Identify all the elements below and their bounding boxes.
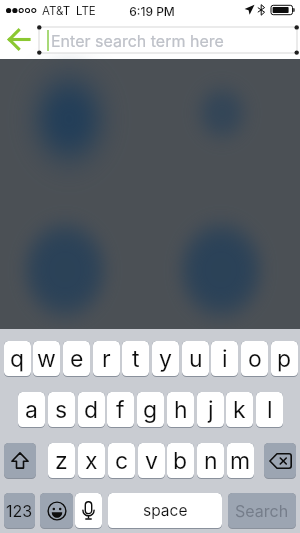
button[interactable]: p [271, 341, 298, 376]
staticText: j [208, 396, 214, 424]
button[interactable]: Microphone [75, 493, 102, 528]
staticText: u [189, 345, 203, 373]
staticText: Enter search term here [51, 31, 224, 50]
button[interactable]: m [227, 443, 254, 478]
button[interactable]: t [122, 341, 149, 376]
staticText: c [115, 447, 129, 475]
button[interactable]: q [4, 341, 31, 376]
button[interactable]: l [256, 392, 283, 427]
button[interactable]: h [167, 392, 194, 427]
staticText: i [222, 345, 228, 373]
staticText: Search [235, 501, 289, 520]
button[interactable]: c [108, 443, 135, 478]
staticText: AT&T [42, 4, 71, 18]
staticText: h [174, 396, 188, 424]
button[interactable]: o [241, 341, 268, 376]
staticText: t [132, 345, 140, 373]
button[interactable]: y [152, 341, 179, 376]
button[interactable]: Back [0, 20, 38, 59]
button[interactable]: z [48, 443, 75, 478]
button[interactable]: r [93, 341, 120, 376]
staticText: LTE [76, 4, 96, 18]
staticText: z [55, 447, 68, 475]
button[interactable]: i [211, 341, 238, 376]
button[interactable]: u [182, 341, 209, 376]
button[interactable]: v [138, 443, 165, 478]
button[interactable]: 123 [4, 493, 35, 528]
staticText: a [25, 396, 38, 424]
staticText: f [116, 396, 125, 424]
button[interactable]: a [18, 392, 45, 427]
staticText: k [233, 396, 246, 424]
staticText: space [143, 501, 188, 520]
staticText: r [102, 345, 111, 373]
button[interactable]: f [107, 392, 134, 427]
button[interactable]: n [197, 443, 224, 478]
button[interactable]: j [197, 392, 224, 427]
button[interactable]: Search [228, 493, 296, 528]
button[interactable]: b [167, 443, 194, 478]
button[interactable]: Emoji [40, 493, 73, 528]
button[interactable]: Shift [4, 443, 36, 478]
button[interactable]: g [137, 392, 164, 427]
staticText: s [55, 396, 68, 424]
staticText: d [84, 396, 99, 424]
staticText: x [85, 447, 98, 475]
staticText: m [230, 447, 251, 475]
staticText: p [277, 345, 292, 373]
staticText: g [143, 396, 158, 424]
staticText: n [204, 447, 218, 475]
button[interactable]: w [33, 341, 60, 376]
staticText: 123 [6, 501, 33, 520]
staticText: v [145, 447, 158, 475]
button[interactable]: space [108, 493, 222, 528]
button[interactable]: s [48, 392, 75, 427]
staticText: w [37, 345, 56, 373]
button[interactable]: x [78, 443, 105, 478]
staticText: y [159, 345, 172, 373]
button[interactable]: Backspace [264, 443, 296, 478]
staticText: 6:19 PM [129, 4, 175, 19]
button[interactable]: Enter search term here [39, 27, 297, 53]
staticText: q [10, 345, 25, 373]
staticText: b [173, 447, 188, 475]
button[interactable]: d [78, 392, 105, 427]
staticText: o [248, 345, 262, 373]
button[interactable]: k [226, 392, 253, 427]
staticText: e [70, 345, 84, 373]
staticText: l [267, 396, 273, 424]
button[interactable]: e [63, 341, 90, 376]
